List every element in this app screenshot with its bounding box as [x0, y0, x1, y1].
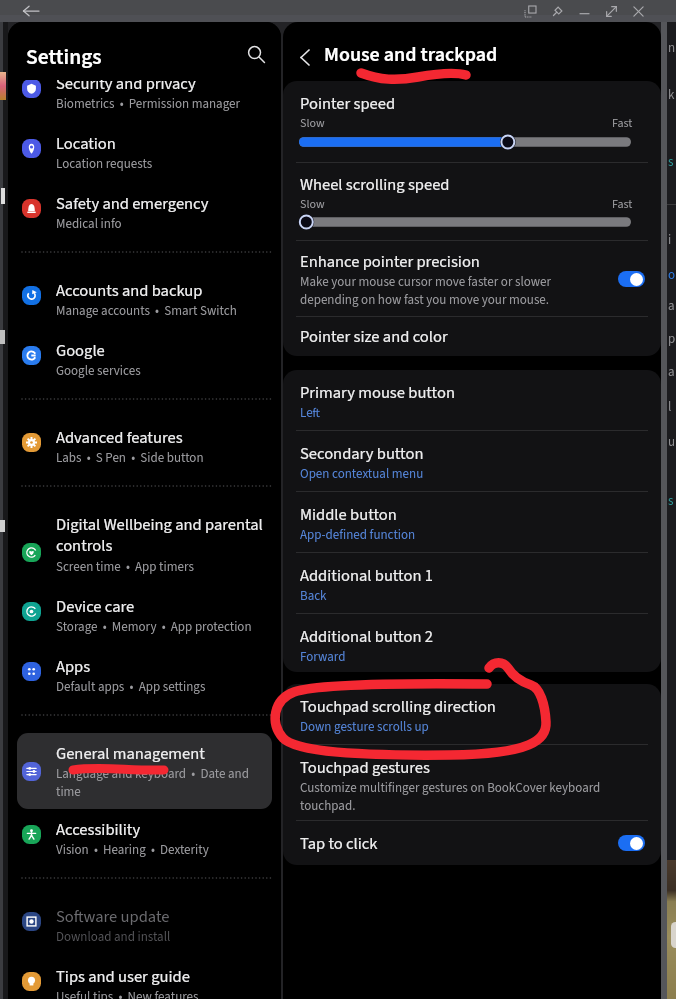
staticText: Accounts and backup [56, 279, 203, 302]
button[interactable]: Touchpad scrolling direction [283, 684, 661, 744]
staticText: Default apps • App settings [56, 678, 206, 697]
staticText: Useful tips • New features [56, 988, 199, 999]
staticText: u [668, 433, 676, 452]
staticText: Device care [56, 595, 135, 618]
staticText: ac [668, 363, 676, 382]
button[interactable]: Accounts and backup [17, 270, 272, 330]
button[interactable]: Navigate up [289, 42, 320, 72]
staticText: Mouse and trackpad [324, 41, 498, 69]
button[interactable]: Search [239, 37, 273, 71]
button[interactable]: Enhance pointer precision [283, 241, 661, 317]
button[interactable]: Pointer size and color [283, 317, 661, 356]
staticText: Additional button 2 [300, 625, 433, 648]
button[interactable]: Tap to click [283, 821, 661, 865]
button[interactable]: Advanced features [17, 417, 272, 477]
staticText: Primary mouse button [300, 381, 455, 404]
staticText: Forward [300, 648, 346, 667]
button[interactable]: Pin window [544, 0, 571, 22]
staticText: k [668, 86, 675, 105]
staticText: Screen time • App timers [56, 558, 194, 577]
staticText: Security and privacy [56, 72, 196, 95]
button[interactable]: Close [625, 0, 652, 22]
staticText: Location requests [56, 155, 153, 174]
button[interactable]: Middle button [283, 492, 661, 552]
staticText: s [668, 153, 674, 172]
button[interactable]: Touchpad gestures [283, 745, 661, 820]
staticText: Back [300, 587, 327, 606]
staticText: Advanced features [56, 426, 183, 449]
button[interactable]: Security and privacy [17, 63, 272, 123]
staticText: Open contextual menu [300, 465, 424, 484]
staticText: Storage • Memory • App protection [56, 618, 252, 637]
staticText: Software update [56, 905, 170, 928]
staticText: App-defined function [300, 526, 416, 545]
staticText: Pointer speed [300, 92, 396, 115]
staticText: Digital Wellbeing and parental controls [56, 513, 264, 558]
staticText: Language and keyboard • Date and time [56, 765, 264, 801]
button[interactable]: Primary mouse button [283, 370, 661, 430]
button[interactable]: Location [17, 123, 272, 183]
button[interactable]: Minimise [571, 0, 598, 22]
staticText: Tap to click [300, 832, 618, 855]
staticText: o [668, 266, 676, 285]
staticText: Google [56, 339, 105, 362]
staticText: Customize multifinger gestures on BookCo… [300, 779, 623, 815]
button[interactable]: Back [16, 0, 46, 22]
staticText: General management [56, 742, 205, 765]
staticText: Down gesture scrolls up [300, 718, 429, 737]
staticText: Google services [56, 362, 141, 381]
staticText: Manage accounts • Smart Switch [56, 302, 237, 321]
staticText: Slow [300, 196, 325, 213]
button[interactable]: Toggle [618, 271, 645, 287]
staticText: Accessibility [56, 818, 141, 841]
staticText: ig [668, 231, 676, 250]
staticText: Fast [612, 115, 633, 132]
staticText: Additional button 1 [300, 564, 433, 587]
button[interactable]: Device care [17, 586, 272, 646]
staticText: Location [56, 132, 116, 155]
staticText: Pointer size and color [300, 325, 448, 348]
button[interactable]: Maximise [598, 0, 625, 22]
button[interactable]: Accessibility [17, 809, 272, 869]
button[interactable]: Additional button 2 [283, 614, 661, 672]
button[interactable]: Additional button 1 [283, 553, 661, 613]
staticText: Touchpad scrolling direction [300, 695, 496, 718]
staticText: Download and install [56, 928, 171, 947]
button[interactable]: Apps [17, 646, 272, 706]
staticText: Labs • S Pen • Side button [56, 449, 204, 468]
staticText: Make your mouse cursor move faster or sl… [300, 273, 570, 309]
button[interactable]: Google [17, 330, 272, 390]
staticText: Vision • Hearing • Dexterity [56, 841, 209, 860]
button[interactable]: Secondary button [283, 431, 661, 491]
staticText: Enhance pointer precision [300, 250, 480, 273]
staticText: Wheel scrolling speed [300, 173, 450, 196]
staticText: Safety and emergency [56, 192, 209, 215]
staticText: Apps [56, 655, 91, 678]
staticText: Touchpad gestures [300, 756, 430, 779]
staticText: Tips and user guide [56, 965, 190, 988]
button[interactable]: Tips and user guide [17, 956, 272, 999]
staticText: Biometrics • Permission manager [56, 95, 240, 114]
staticText: l [668, 398, 672, 417]
button[interactable]: Safety and emergency [17, 183, 272, 243]
button[interactable]: Split screen [517, 0, 544, 22]
staticText: ap [668, 297, 676, 316]
staticText: Medical info [56, 215, 122, 234]
button[interactable]: Software update [17, 896, 272, 956]
staticText: Fast [612, 196, 633, 213]
staticText: Slow [300, 115, 325, 132]
staticText: os [668, 6, 676, 25]
staticText: Settings [26, 42, 102, 73]
staticText: Middle button [300, 503, 397, 526]
button[interactable]: Toggle [618, 835, 645, 851]
staticText: n [668, 39, 676, 58]
staticText: Left [300, 404, 321, 423]
button[interactable]: Digital Wellbeing and parental controls [17, 504, 272, 586]
staticText: p [668, 330, 676, 349]
staticText: s [668, 492, 674, 511]
staticText: Secondary button [300, 442, 424, 465]
button[interactable]: General management [17, 733, 272, 809]
